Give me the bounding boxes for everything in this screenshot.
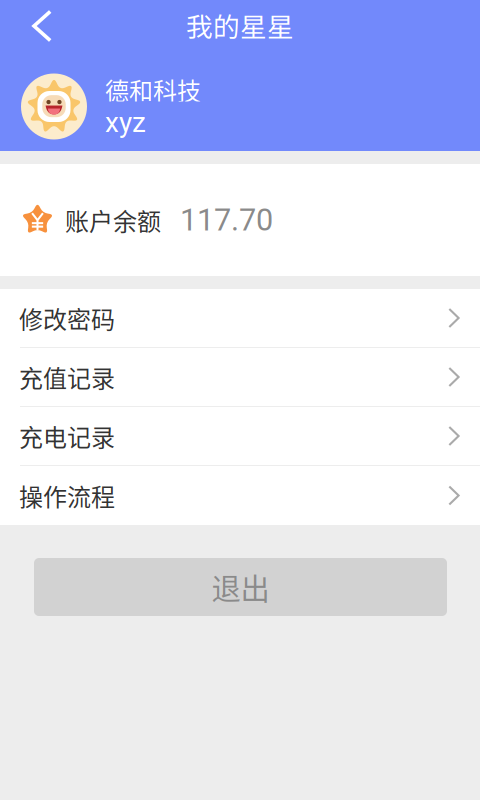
staticText: 德和科技 bbox=[105, 72, 201, 107]
button[interactable]: 修改密码 bbox=[0, 289, 480, 348]
button[interactable]: 充值记录 bbox=[0, 348, 480, 407]
staticText: 账户余额 bbox=[65, 203, 161, 237]
button[interactable]: 返回 bbox=[0, 0, 68, 52]
button[interactable]: 充电记录 bbox=[0, 407, 480, 466]
staticText: 操作流程 bbox=[19, 478, 115, 513]
staticText: 退出 bbox=[211, 566, 269, 608]
button[interactable]: 德和科技 bbox=[0, 52, 480, 151]
staticText: 117.70 bbox=[180, 202, 273, 238]
staticText: 充电记录 bbox=[19, 419, 115, 453]
button[interactable]: 退出 bbox=[34, 558, 447, 616]
staticText: 我的星星 bbox=[186, 6, 294, 44]
staticText: 充值记录 bbox=[19, 360, 115, 394]
button[interactable]: 操作流程 bbox=[0, 466, 480, 525]
staticText: xyz bbox=[105, 106, 146, 139]
staticText: 修改密码 bbox=[19, 301, 115, 335]
